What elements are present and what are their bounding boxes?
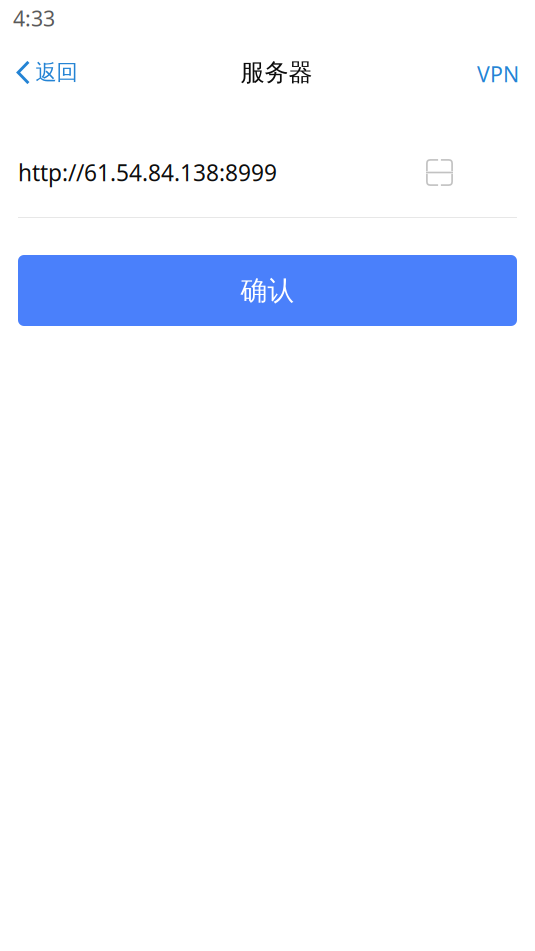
staticText: 服务器 bbox=[240, 58, 312, 87]
button[interactable]: Scan QR code bbox=[417, 150, 462, 195]
button[interactable]: 确认 bbox=[18, 255, 517, 326]
button[interactable]: VPN bbox=[463, 51, 535, 94]
staticText: VPN bbox=[477, 60, 519, 88]
button[interactable]: http://61.54.84.138:8999 bbox=[18, 150, 417, 195]
button[interactable]: 返回 bbox=[0, 52, 89, 93]
staticText: 返回 bbox=[35, 59, 77, 86]
staticText: 确认 bbox=[240, 274, 294, 307]
staticText: http://61.54.84.138:8999 bbox=[18, 157, 277, 187]
staticText: 4:33 bbox=[13, 4, 55, 32]
